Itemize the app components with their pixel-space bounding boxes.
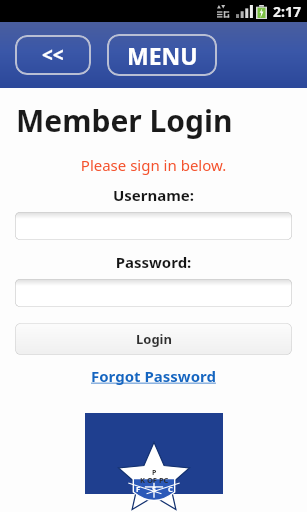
staticText: 2:17 [273, 2, 301, 21]
staticText: Member Login [16, 100, 233, 141]
staticText: F [136, 484, 141, 494]
button[interactable] [15, 212, 292, 240]
staticText: MENU [127, 40, 198, 71]
staticText: P [152, 468, 157, 478]
staticText: S [152, 484, 157, 494]
staticText: << [42, 42, 64, 68]
staticText: Login [136, 330, 172, 348]
staticText: Username: [0, 185, 307, 205]
button[interactable]: Forgot Password [87, 364, 220, 388]
staticText: K OF PC [140, 475, 169, 485]
staticText: C [168, 484, 173, 494]
staticText: Forgot Password [91, 366, 216, 386]
button[interactable] [15, 279, 292, 307]
staticText: Password: [0, 252, 307, 272]
button[interactable]: MENU [107, 34, 217, 76]
button[interactable]: Back [15, 35, 91, 75]
staticText: Please sign in below. [0, 155, 307, 175]
button[interactable]: Login [15, 323, 292, 355]
